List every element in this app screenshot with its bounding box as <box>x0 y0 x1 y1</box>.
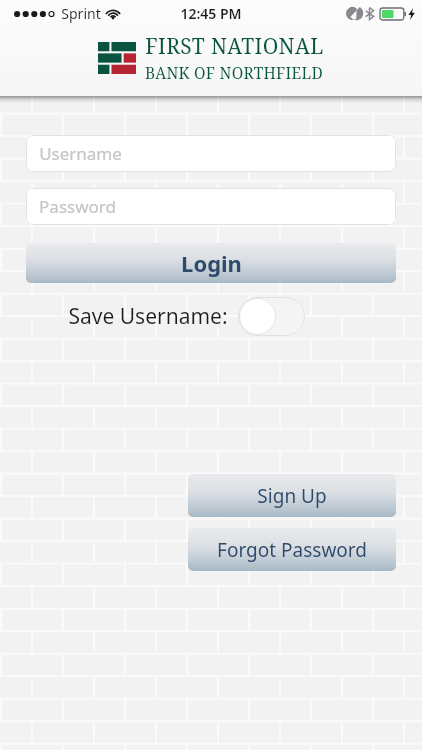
staticText: Sprint <box>61 4 101 23</box>
button[interactable]: Login <box>26 243 396 283</box>
button[interactable]: Username <box>26 135 396 172</box>
button[interactable]: Password <box>26 188 396 225</box>
staticText: Password <box>39 195 116 218</box>
staticText: Login <box>181 248 242 278</box>
button[interactable]: Save Username toggle, off <box>238 297 305 336</box>
button[interactable]: Forgot Password <box>188 528 396 571</box>
staticText: Forgot Password <box>217 537 367 563</box>
staticText: FIRST NATIONAL <box>145 32 324 61</box>
staticText: 12:45 PM <box>180 4 242 23</box>
staticText: Username <box>39 142 122 165</box>
staticText: Save Username: <box>68 302 228 331</box>
button[interactable]: Sign Up <box>188 474 396 517</box>
staticText: Sign Up <box>257 483 327 509</box>
staticText: BANK OF NORTHFIELD <box>145 62 323 83</box>
